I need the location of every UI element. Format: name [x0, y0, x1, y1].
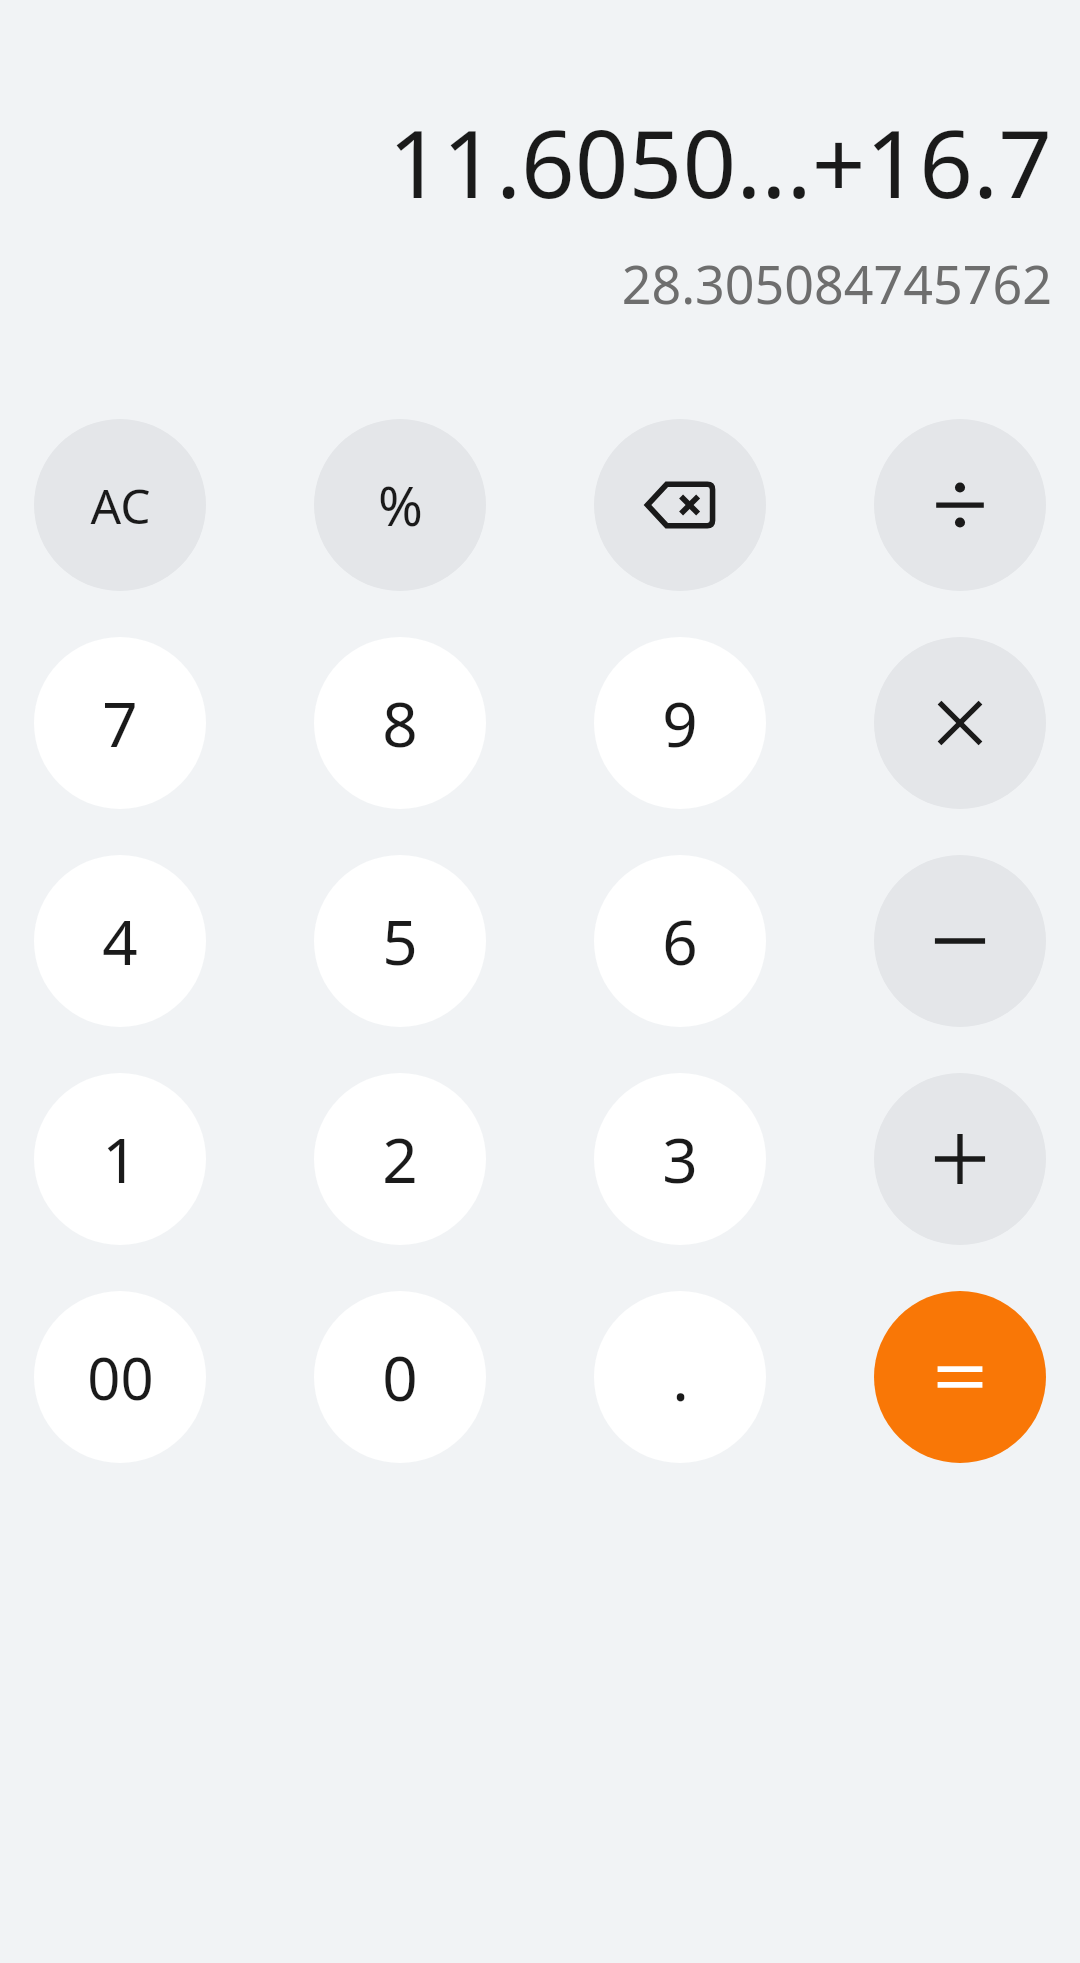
staticText: 2 — [382, 1117, 418, 1201]
button[interactable]: 4 — [34, 855, 206, 1027]
button[interactable]: 9 — [594, 637, 766, 809]
staticText: . — [672, 1335, 689, 1419]
staticText: AC — [90, 473, 151, 538]
staticText: 9 — [662, 681, 698, 765]
staticText: 5 — [382, 899, 418, 983]
button[interactable]: Minus — [874, 855, 1046, 1027]
button[interactable]: . — [594, 1291, 766, 1463]
button[interactable]: AC — [34, 419, 206, 591]
staticText: 11.6050...+16.7 — [0, 98, 1052, 226]
staticText: 1 — [102, 1117, 138, 1201]
staticText: % — [378, 468, 423, 542]
button[interactable]: 7 — [34, 637, 206, 809]
staticText: 3 — [662, 1117, 698, 1201]
button[interactable]: 1 — [34, 1073, 206, 1245]
button[interactable]: 0 — [314, 1291, 486, 1463]
staticText: 7 — [102, 681, 138, 765]
button[interactable]: 3 — [594, 1073, 766, 1245]
button[interactable]: 2 — [314, 1073, 486, 1245]
button[interactable]: % — [314, 419, 486, 591]
staticText: 6 — [662, 899, 698, 983]
button[interactable]: 00 — [34, 1291, 206, 1463]
button[interactable]: Plus — [874, 1073, 1046, 1245]
staticText: 0 — [382, 1335, 418, 1419]
button[interactable]: Backspace — [594, 419, 766, 591]
staticText: 8 — [382, 681, 418, 765]
button[interactable]: Divide — [874, 419, 1046, 591]
button[interactable]: 8 — [314, 637, 486, 809]
staticText: 4 — [102, 899, 138, 983]
button[interactable]: Equals — [874, 1291, 1046, 1463]
staticText: 00 — [87, 1338, 154, 1417]
button[interactable]: Multiply — [874, 637, 1046, 809]
staticText: 28.305084745762 — [0, 248, 1052, 319]
button[interactable]: 6 — [594, 855, 766, 1027]
button[interactable]: 5 — [314, 855, 486, 1027]
